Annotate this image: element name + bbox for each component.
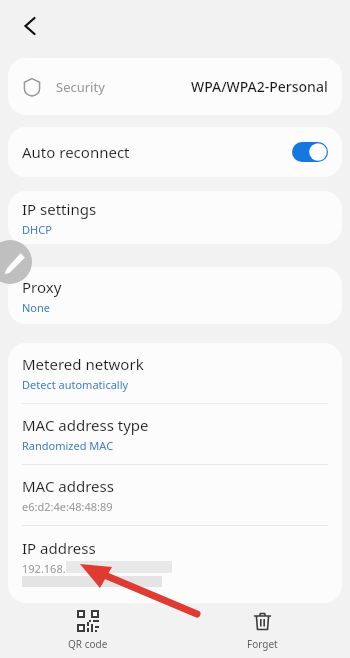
button[interactable]: Proxy (8, 267, 342, 324)
staticText: DHCP (22, 222, 52, 237)
staticText: QR code (68, 637, 108, 651)
staticText: Auto reconnect (22, 142, 130, 162)
button[interactable]: MAC address type (8, 404, 342, 464)
staticText: Randomized MAC (22, 438, 114, 453)
button[interactable]: Metered network (8, 343, 342, 403)
staticText: Metered network (22, 354, 144, 374)
staticText: WPA/WPA2-Personal (191, 77, 328, 96)
button[interactable]: Edit (0, 240, 32, 284)
staticText: MAC address (22, 476, 114, 496)
staticText: 192.168.0. (22, 561, 75, 576)
button[interactable]: MAC address (8, 465, 342, 525)
staticText: Detect automatically (22, 377, 129, 392)
staticText: IP address (22, 538, 96, 558)
button[interactable]: Security (8, 58, 342, 115)
button[interactable]: Back (10, 6, 50, 46)
button[interactable]: IP address (8, 526, 342, 603)
staticText: MAC address type (22, 415, 149, 435)
staticText: IP settings (22, 199, 97, 219)
staticText: Proxy (22, 277, 62, 297)
staticText: e6:d2:4e:48:48:89 (22, 499, 113, 514)
button[interactable]: Forget (175, 603, 350, 658)
button[interactable]: QR code (0, 603, 175, 658)
button[interactable]: IP settings (8, 191, 342, 244)
staticText: Security (56, 78, 105, 96)
staticText: None (22, 300, 51, 315)
staticText: Forget (247, 637, 278, 651)
button[interactable]: Auto reconnect (8, 127, 342, 177)
